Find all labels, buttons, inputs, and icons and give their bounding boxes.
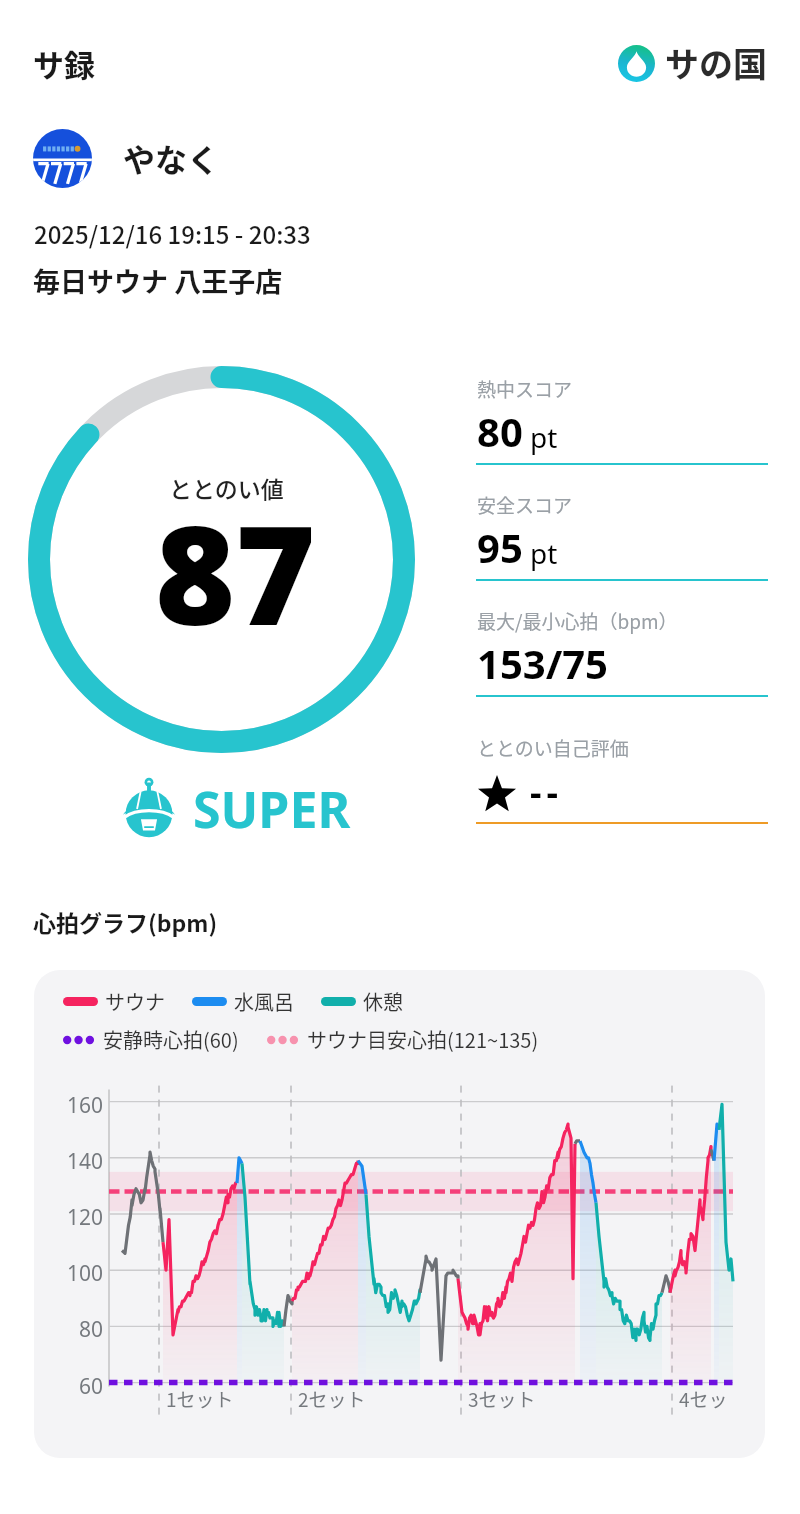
button[interactable]: ととのい自己評価 (476, 733, 768, 824)
button[interactable]: 安全スコア (476, 490, 768, 581)
staticText: pt (530, 534, 558, 572)
staticText: -- (530, 767, 564, 816)
button[interactable]: 最大/最小心拍（bpm） (476, 606, 768, 697)
staticText: サの国 (665, 38, 767, 87)
staticText: 熱中スコア (477, 375, 573, 403)
staticText: 休憩 (363, 987, 403, 1016)
staticText: 153/75 (477, 636, 608, 690)
staticText: 2セット (298, 1385, 366, 1413)
staticText: 最大/最小心拍（bpm） (477, 607, 678, 635)
staticText: SUPER (193, 775, 351, 843)
staticText: ととのい値 (169, 471, 284, 504)
staticText: pt (530, 418, 558, 456)
staticText: 160 (67, 1091, 104, 1120)
staticText: 3セット (468, 1385, 536, 1413)
staticText: やなく (123, 135, 220, 181)
staticText: 毎日サウナ 八王子店 (33, 261, 283, 300)
staticText: ととのい自己評価 (477, 734, 629, 762)
staticText: 80 (477, 404, 523, 458)
staticText: 4セッ (679, 1385, 728, 1413)
staticText: 100 (67, 1259, 104, 1288)
staticText: 140 (67, 1147, 104, 1176)
staticText: 95 (477, 520, 523, 574)
staticText: 安全スコア (477, 491, 573, 519)
staticText: 1セット (166, 1385, 234, 1413)
button[interactable]: サの国 (618, 39, 767, 88)
button[interactable]: やなく (20, 126, 220, 190)
staticText: サウナ目安心拍(121~135) (307, 1025, 539, 1054)
staticText: サ録 (33, 41, 95, 86)
staticText: 80 (79, 1315, 104, 1344)
button[interactable]: 熱中スコア (476, 374, 768, 465)
staticText: 87 (155, 479, 316, 666)
staticText: 60 (79, 1372, 104, 1401)
staticText: 安静時心拍(60) (103, 1025, 239, 1054)
staticText: 水風呂 (234, 987, 294, 1016)
staticText: 120 (67, 1203, 104, 1232)
button[interactable]: SUPER (110, 770, 370, 842)
staticText: 心拍グラフ(bpm) (33, 905, 218, 938)
staticText: 2025/12/16 19:15 - 20:33 (34, 216, 311, 251)
staticText: サウナ (105, 987, 165, 1016)
